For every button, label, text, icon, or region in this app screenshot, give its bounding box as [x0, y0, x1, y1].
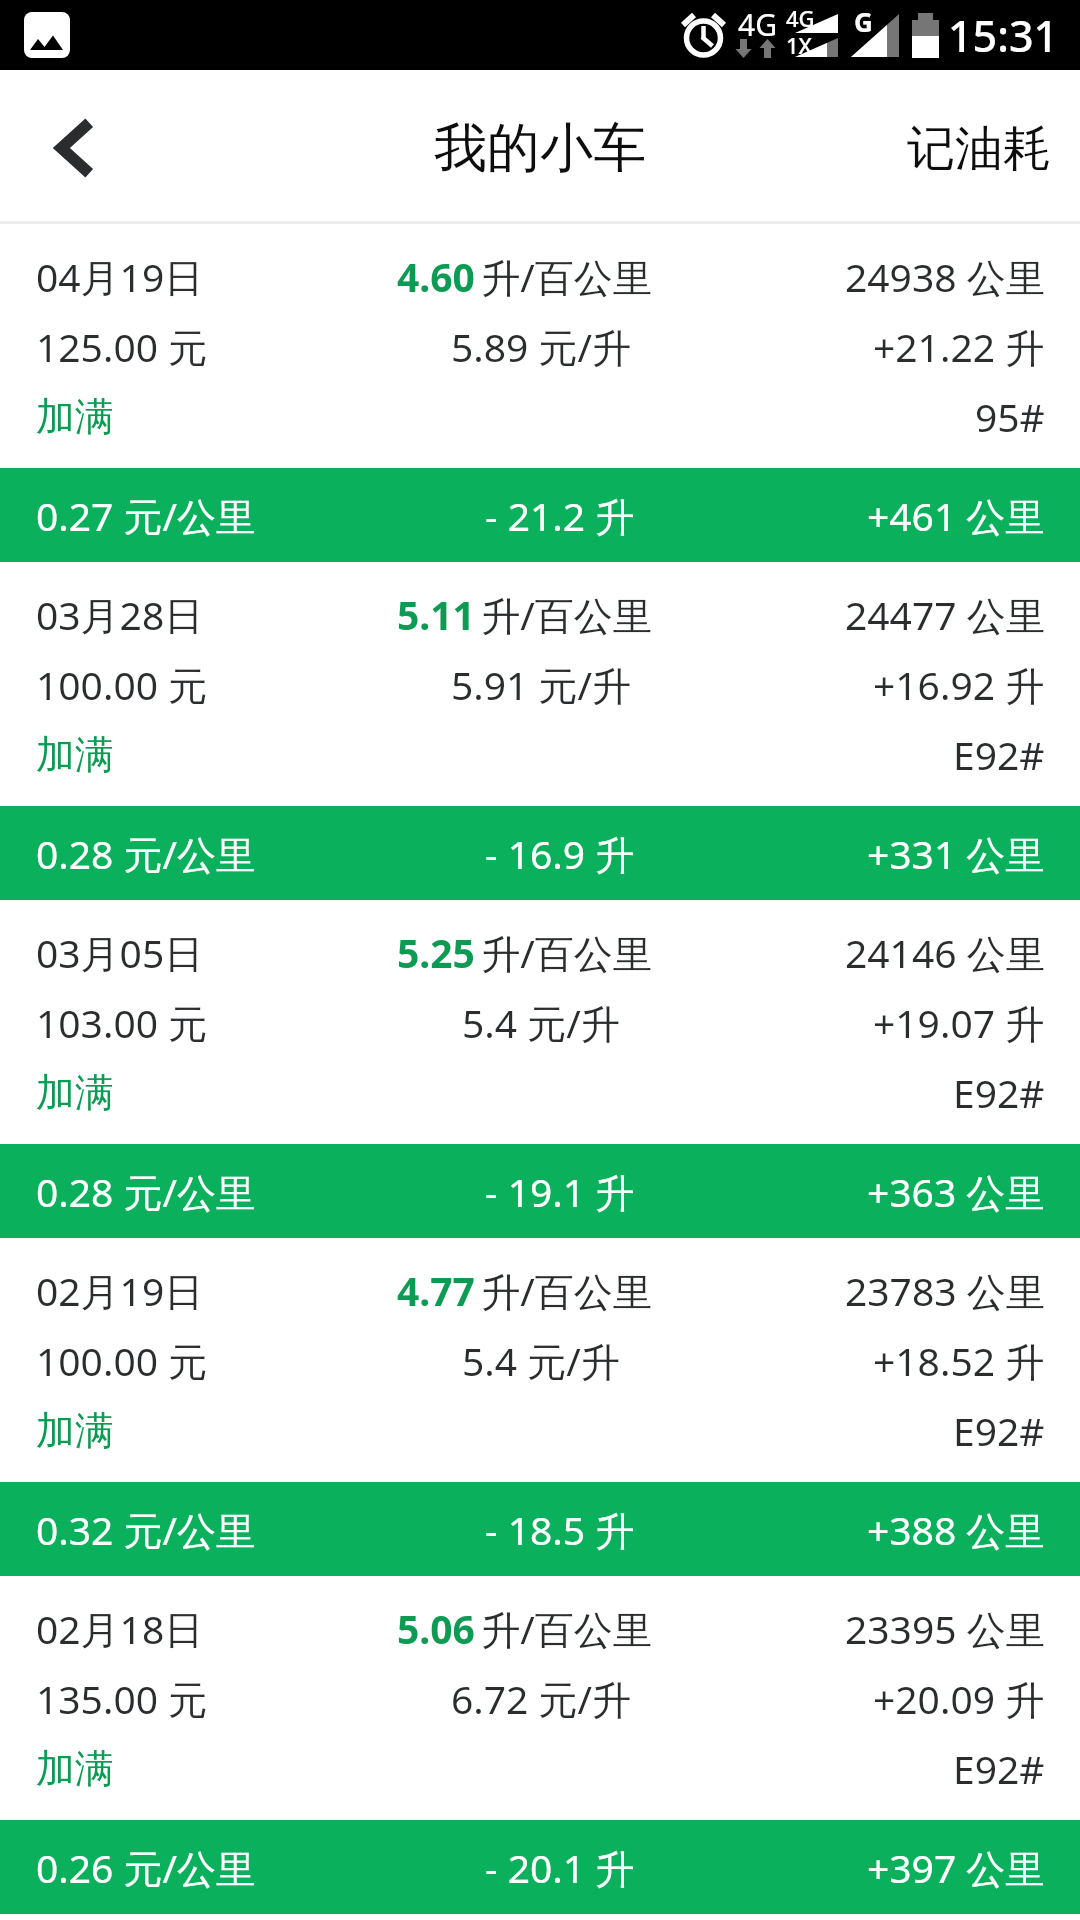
staticText: 103.00 元 — [36, 996, 208, 1049]
staticText: 95# — [975, 390, 1045, 443]
staticText: - 18.5 升 — [485, 1503, 635, 1556]
staticText: 5.91 元/升 — [451, 658, 632, 711]
staticText: 100.00 元 — [36, 658, 208, 711]
staticText: E92# — [953, 728, 1045, 781]
staticText: 02月19日 — [36, 1264, 204, 1317]
staticText: +397 公里 — [867, 1841, 1045, 1894]
staticText: 0.28 元/公里 — [36, 1165, 256, 1218]
staticText: - 21.2 升 — [485, 489, 635, 542]
staticText: 125.00 元 — [36, 320, 208, 373]
staticText: 加满 — [36, 392, 114, 441]
staticText: E92# — [953, 1404, 1045, 1457]
staticText: 24477 公里 — [845, 588, 1045, 641]
staticText: 5.25 升/百公里 — [397, 926, 652, 979]
staticText: 03月28日 — [36, 588, 204, 641]
staticText: +461 公里 — [867, 489, 1045, 542]
staticText: +16.92 升 — [873, 658, 1045, 711]
button[interactable]: 0.28 元/公里 — [0, 806, 1080, 900]
staticText: 加满 — [36, 1744, 114, 1793]
button[interactable]: 02月19日 — [0, 1238, 1080, 1482]
staticText: 记油耗 — [907, 119, 1051, 179]
staticText: 23395 公里 — [845, 1602, 1045, 1655]
button[interactable]: 03月05日 — [0, 900, 1080, 1144]
staticText: 135.00 元 — [36, 1672, 208, 1725]
staticText: 4G — [738, 4, 777, 45]
staticText: 我的小车 — [434, 115, 646, 182]
staticText: +18.52 升 — [873, 1334, 1045, 1387]
staticText: - 20.1 升 — [485, 1841, 635, 1894]
staticText: 加满 — [36, 1406, 114, 1455]
staticText: +19.07 升 — [873, 996, 1045, 1049]
button[interactable]: 02月18日 — [0, 1576, 1080, 1820]
staticText: E92# — [953, 1066, 1045, 1119]
staticText: +363 公里 — [867, 1165, 1045, 1218]
staticText: 6.72 元/升 — [451, 1672, 632, 1725]
staticText: 24146 公里 — [845, 926, 1045, 979]
staticText: 5.06 升/百公里 — [397, 1602, 652, 1655]
staticText: 0.27 元/公里 — [36, 489, 256, 542]
staticText: +21.22 升 — [873, 320, 1045, 373]
staticText: 5.4 元/升 — [462, 1334, 620, 1387]
staticText: 4.77 升/百公里 — [397, 1264, 652, 1317]
staticText: 0.32 元/公里 — [36, 1503, 256, 1556]
staticText: 15:31 — [948, 6, 1059, 65]
staticText: 4G — [786, 3, 815, 33]
staticText: 100.00 元 — [36, 1334, 208, 1387]
button[interactable]: 0.28 元/公里 — [0, 1144, 1080, 1238]
staticText: 4.60 升/百公里 — [397, 250, 652, 303]
staticText: 24938 公里 — [845, 250, 1045, 303]
staticText: 加满 — [36, 1068, 114, 1117]
staticText: - 19.1 升 — [485, 1165, 635, 1218]
staticText: 0.26 元/公里 — [36, 1841, 256, 1894]
button[interactable]: 0.32 元/公里 — [0, 1482, 1080, 1576]
staticText: +388 公里 — [867, 1503, 1045, 1556]
staticText: 5.4 元/升 — [462, 996, 620, 1049]
staticText: 5.89 元/升 — [451, 320, 632, 373]
staticText: G — [854, 4, 873, 39]
button[interactable]: Back — [0, 73, 145, 218]
staticText: 23783 公里 — [845, 1264, 1045, 1317]
staticText: 0.28 元/公里 — [36, 827, 256, 880]
staticText: 1X — [786, 30, 813, 60]
staticText: 5.11 升/百公里 — [397, 588, 652, 641]
staticText: E92# — [953, 1742, 1045, 1795]
staticText: 03月05日 — [36, 926, 204, 979]
staticText: 加满 — [36, 730, 114, 779]
staticText: 04月19日 — [36, 250, 204, 303]
staticText: +331 公里 — [867, 827, 1045, 880]
staticText: +20.09 升 — [873, 1672, 1045, 1725]
staticText: - 16.9 升 — [485, 827, 635, 880]
button[interactable]: 0.26 元/公里 — [0, 1820, 1080, 1914]
button[interactable]: 04月19日 — [0, 224, 1080, 468]
button[interactable]: 03月28日 — [0, 562, 1080, 806]
button[interactable]: 0.27 元/公里 — [0, 468, 1080, 562]
staticText: 02月18日 — [36, 1602, 204, 1655]
button[interactable]: 记油耗 — [867, 70, 1080, 221]
